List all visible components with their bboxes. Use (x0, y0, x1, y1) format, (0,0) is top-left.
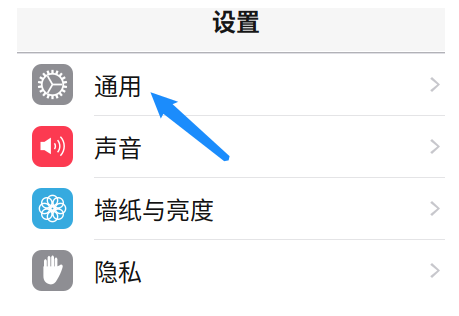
button[interactable]: 隐私 (17, 240, 445, 302)
button[interactable]: 声音 (17, 116, 445, 178)
staticText: 墙纸与亮度 (94, 191, 214, 226)
staticText: 通用 (94, 67, 142, 102)
button[interactable]: 墙纸与亮度 (17, 178, 445, 240)
staticText: 设置 (212, 3, 260, 38)
staticText: 声音 (94, 129, 142, 164)
staticText: 隐私 (94, 253, 142, 288)
button[interactable]: 通用 (17, 54, 445, 116)
